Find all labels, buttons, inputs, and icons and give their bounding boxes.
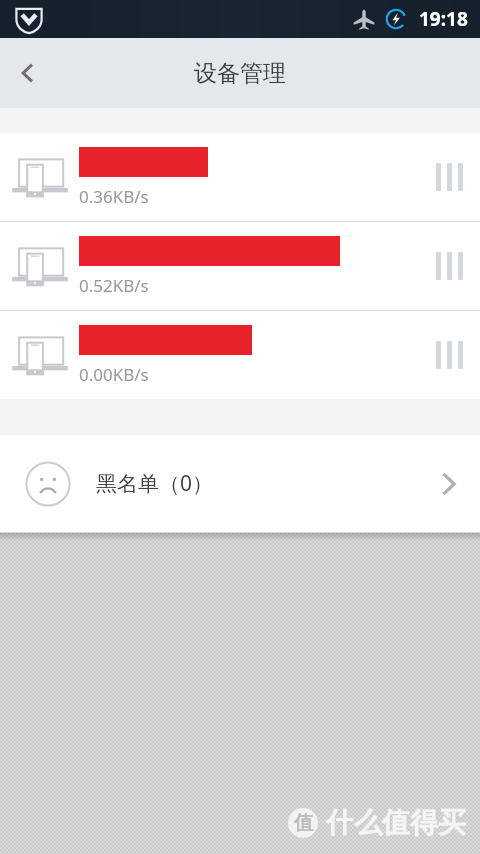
staticText: 值: [294, 811, 313, 835]
staticText: 19:18: [419, 6, 468, 32]
button[interactable]: Reorder: [418, 222, 480, 310]
staticText: 黑名单（0）: [96, 469, 416, 498]
button[interactable]: Reorder: [418, 133, 480, 221]
staticText: 设备管理: [194, 59, 286, 88]
staticText: 0.52KB/s: [79, 274, 149, 297]
button[interactable]: 0.00KB/s: [0, 311, 480, 399]
staticText: 什么值得买: [326, 805, 466, 840]
button[interactable]: 黑名单（0）: [0, 435, 480, 532]
button[interactable]: Back: [0, 45, 56, 101]
button[interactable]: 0.52KB/s: [0, 222, 480, 310]
button[interactable]: 0.36KB/s: [0, 133, 480, 221]
button[interactable]: Reorder: [418, 311, 480, 399]
staticText: 0.00KB/s: [79, 363, 149, 386]
staticText: 0.36KB/s: [79, 185, 149, 208]
